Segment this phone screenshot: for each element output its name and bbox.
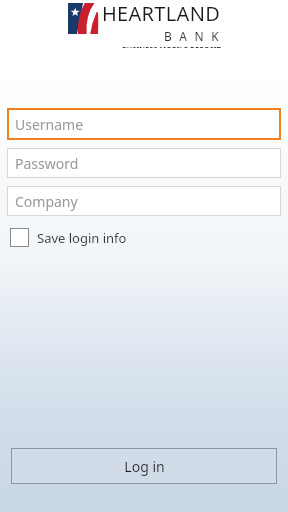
button[interactable]: Company xyxy=(7,186,281,216)
button[interactable]: Username xyxy=(7,108,281,140)
button[interactable]: Save login info xyxy=(8,226,129,249)
staticText: Username xyxy=(15,115,84,134)
other: Heartland Bank logo xyxy=(68,3,98,34)
staticText: BUSINESS MOBILE DEPOSIT xyxy=(122,45,221,48)
staticText: B A N K xyxy=(164,28,221,44)
staticText: Log in xyxy=(124,457,165,476)
staticText: Password xyxy=(15,154,79,173)
button[interactable]: Password xyxy=(7,148,281,178)
button[interactable]: Log in xyxy=(11,448,277,484)
staticText: HEARTLAND xyxy=(102,0,221,27)
staticText: Company xyxy=(15,192,78,211)
staticText: Save login info xyxy=(37,229,127,247)
